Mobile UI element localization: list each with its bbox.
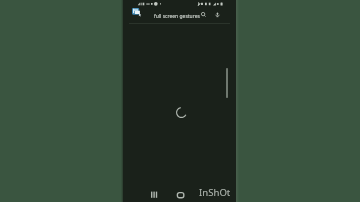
button[interactable]: Home bbox=[174, 186, 188, 200]
button[interactable]: App icon bbox=[132, 7, 142, 17]
button[interactable]: full screen gestures bbox=[154, 13, 200, 20]
staticText: InShOt bbox=[199, 186, 231, 199]
button[interactable]: Voice search bbox=[214, 11, 221, 18]
button[interactable]: Search field: full screen gestures bbox=[129, 7, 199, 22]
button[interactable]: Search bbox=[201, 12, 207, 18]
button[interactable]: Recent apps bbox=[147, 186, 161, 200]
